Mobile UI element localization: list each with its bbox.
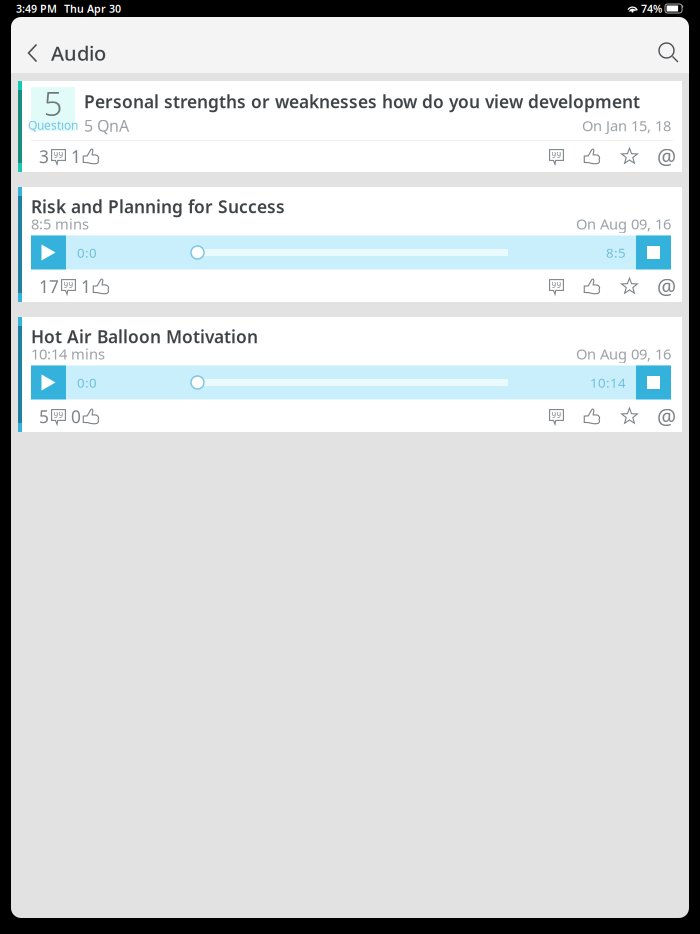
staticText: 99 [551, 150, 561, 160]
staticText: 1 [71, 145, 81, 168]
staticText: 0:0 [77, 374, 97, 391]
staticText: Thu Apr 30 [64, 1, 121, 16]
staticText: 0:0 [77, 244, 97, 261]
staticText: 99 [53, 150, 63, 160]
staticText: 99 [63, 280, 73, 290]
staticText: 8:5 mins [31, 214, 89, 233]
staticText: @ [657, 272, 676, 301]
staticText: @ [657, 142, 676, 171]
button[interactable]: Risk and Planning for Success [18, 187, 682, 302]
staticText: 10:14 mins [31, 344, 105, 363]
button[interactable]: 5 [18, 81, 682, 172]
staticText: 5 QnA [84, 115, 129, 136]
staticText: 0 [71, 405, 81, 428]
staticText: 1 [81, 275, 91, 298]
button[interactable]: Search [654, 37, 684, 69]
staticText: 8:5 [606, 244, 626, 261]
staticText: Personal strengths or weaknesses how do … [84, 90, 640, 113]
button[interactable]: Play [31, 365, 66, 399]
staticText: 99 [551, 280, 561, 290]
staticText: Risk and Planning for Success [31, 195, 285, 218]
button[interactable]: Hot Air Balloon Motivation [18, 317, 682, 432]
staticText: 3 [39, 145, 49, 168]
staticText: Question [28, 117, 78, 133]
staticText: On Jan 15, 18 [582, 116, 671, 135]
staticText: 74% [641, 1, 662, 16]
staticText: 99 [53, 410, 63, 420]
staticText: 3:49 PM [16, 1, 57, 16]
staticText: 5 [43, 81, 62, 125]
staticText: Audio [51, 40, 106, 66]
staticText: @ [657, 402, 676, 431]
staticText: On Aug 09, 16 [576, 214, 671, 233]
button[interactable]: Quote [549, 149, 564, 164]
button[interactable]: Play [31, 235, 66, 269]
button[interactable]: Back [19, 37, 46, 68]
button[interactable]: Favourite [621, 148, 638, 165]
button[interactable]: Favourite [621, 278, 638, 295]
staticText: 17 [39, 275, 59, 298]
button[interactable]: Mention [658, 148, 675, 165]
button[interactable]: Favourite [621, 408, 638, 425]
button[interactable]: Like [583, 407, 602, 426]
button[interactable]: Mention [658, 278, 675, 295]
staticText: Hot Air Balloon Motivation [31, 325, 258, 348]
staticText: 99 [551, 410, 561, 420]
button[interactable]: Like [583, 147, 602, 166]
button[interactable]: Mention [658, 408, 675, 425]
button[interactable]: Quote [549, 409, 564, 424]
button[interactable]: Stop [636, 235, 671, 269]
staticText: 5 [39, 405, 49, 428]
button[interactable]: Stop [636, 365, 671, 399]
button[interactable]: Like [583, 277, 602, 296]
staticText: On Aug 09, 16 [576, 344, 671, 363]
button[interactable]: Quote [549, 279, 564, 294]
staticText: 10:14 [590, 374, 626, 391]
